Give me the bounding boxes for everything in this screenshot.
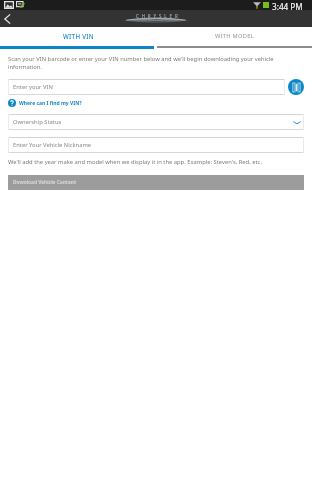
staticText: WITH MODEL: [215, 32, 254, 40]
staticText: Where can I find my VIN?: [19, 100, 82, 107]
staticText: Scan your VIN barcode or enter your VIN …: [8, 55, 298, 71]
button[interactable]: WITH MODEL: [156, 27, 312, 45]
button[interactable]: WITH VIN: [0, 27, 156, 45]
staticText: Enter Your Vehicle Nickname: [13, 141, 92, 149]
button[interactable]: Ownership Status: [8, 114, 304, 130]
button[interactable]: Enter Your Vehicle Nickname: [8, 137, 304, 153]
staticText: Ownership Status: [13, 118, 62, 126]
staticText: 3:44 PM: [272, 1, 303, 11]
button[interactable]: Enter your VIN: [8, 79, 285, 95]
staticText: We'll add the year make and model when w…: [8, 158, 304, 166]
button[interactable]: Scan VIN barcode: [288, 79, 304, 95]
staticText: Enter your VIN: [13, 83, 53, 91]
staticText: CHRYSLER: [136, 13, 181, 19]
button[interactable]: Download Vehicle Content: [8, 175, 304, 190]
staticText: WITH VIN: [63, 32, 94, 40]
staticText: Download Vehicle Content: [13, 179, 77, 186]
button[interactable]: Where can I find my VIN?: [8, 99, 82, 107]
button[interactable]: Back: [0, 10, 14, 27]
